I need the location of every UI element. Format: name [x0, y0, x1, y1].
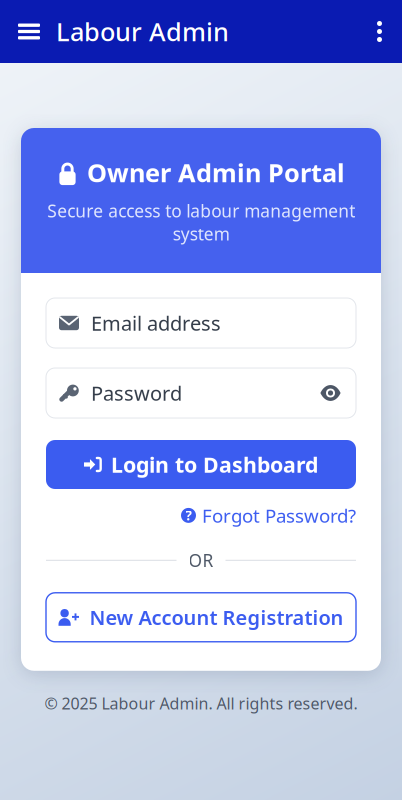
staticText: Secure access to labour management syste…	[47, 199, 355, 245]
button[interactable]: Login to Dashboard	[46, 440, 356, 489]
button[interactable]: Show password	[318, 384, 343, 402]
button[interactable]: Menu	[8, 9, 50, 53]
staticText: New Account Registration	[89, 604, 343, 631]
staticText: Forgot Password?	[202, 503, 356, 528]
staticText: © 2025 Labour Admin. All rights reserved…	[44, 693, 357, 714]
staticText: Owner Admin Portal	[87, 156, 345, 189]
button[interactable]: ?	[181, 503, 356, 528]
staticText: Password	[91, 380, 182, 406]
staticText: OR	[188, 549, 213, 572]
button[interactable]: New Account Registration	[46, 593, 356, 642]
staticText: ?	[185, 506, 191, 524]
staticText: Login to Dashboard	[111, 450, 318, 479]
staticText: Labour Admin	[56, 15, 229, 48]
staticText: Email address	[91, 310, 221, 336]
button[interactable]: More options	[365, 10, 394, 53]
